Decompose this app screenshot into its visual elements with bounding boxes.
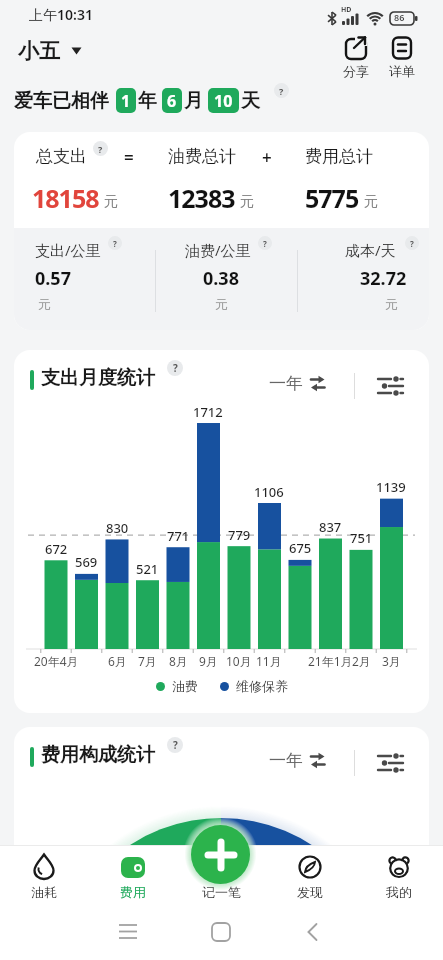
- staticText: 0.38: [203, 266, 239, 291]
- staticText: 672: [45, 540, 68, 558]
- staticText: 油费总计: [168, 146, 236, 167]
- staticText: 771: [167, 527, 190, 545]
- staticText: 油费: [172, 678, 198, 694]
- staticText: 10: [214, 90, 233, 112]
- button[interactable]: [378, 753, 404, 773]
- staticText: 830: [106, 519, 129, 537]
- staticText: =: [124, 146, 134, 169]
- button[interactable]: 详单: [389, 36, 415, 79]
- staticText: ?: [279, 85, 284, 97]
- staticText: 10月: [226, 653, 252, 669]
- staticText: ?: [113, 238, 117, 249]
- staticText: 油费/公里: [185, 240, 251, 260]
- staticText: 小五: [18, 38, 60, 64]
- staticText: 8月: [169, 653, 188, 669]
- staticText: 6月: [108, 653, 127, 669]
- staticText: 费用: [120, 884, 146, 900]
- staticText: 0.57: [35, 266, 71, 291]
- staticText: 一年: [269, 750, 303, 771]
- button[interactable]: 分享: [340, 36, 372, 79]
- button[interactable]: 油耗: [19, 853, 69, 900]
- staticText: 779: [228, 526, 251, 544]
- staticText: 元: [104, 193, 118, 211]
- staticText: 发现: [297, 884, 323, 900]
- staticText: 元: [240, 193, 254, 211]
- staticText: 521: [136, 560, 159, 578]
- staticText: 油耗: [31, 884, 57, 900]
- staticText: 费用构成统计: [41, 743, 155, 767]
- staticText: 9月: [199, 653, 218, 669]
- staticText: ?: [98, 143, 103, 155]
- staticText: ?: [410, 238, 414, 249]
- staticText: ?: [263, 238, 267, 249]
- staticText: 上午10:31: [29, 5, 93, 24]
- staticText: 32.72: [360, 266, 407, 291]
- staticText: 21年1月: [308, 653, 353, 669]
- staticText: 2月: [352, 653, 371, 669]
- staticText: 维修保养: [236, 678, 288, 694]
- staticText: 12383: [168, 181, 235, 215]
- staticText: 费用总计: [305, 146, 373, 167]
- button[interactable]: 费用: [108, 853, 158, 900]
- staticText: 元: [38, 296, 51, 312]
- button[interactable]: [378, 376, 404, 396]
- staticText: 一年: [269, 373, 303, 394]
- button[interactable]: 小五: [18, 38, 82, 64]
- staticText: 569: [75, 553, 98, 571]
- staticText: 月: [184, 89, 203, 113]
- staticText: 天: [241, 89, 260, 113]
- staticText: 1: [121, 90, 131, 112]
- staticText: 我的: [386, 884, 412, 900]
- staticText: 20年4月: [34, 653, 79, 669]
- staticText: 详单: [389, 63, 415, 79]
- staticText: 支出月度统计: [41, 366, 155, 390]
- staticText: 86: [394, 11, 405, 23]
- staticText: 记一笔: [202, 884, 241, 900]
- staticText: 元: [385, 296, 398, 312]
- staticText: 5775: [305, 181, 359, 215]
- staticText: 18158: [32, 181, 99, 215]
- staticText: 751: [350, 529, 373, 547]
- staticText: 支出/公里: [35, 240, 101, 260]
- staticText: HD: [341, 5, 352, 15]
- staticText: 675: [289, 539, 312, 557]
- button[interactable]: 发现: [285, 853, 335, 900]
- staticText: 6: [167, 90, 177, 112]
- staticText: 1712: [193, 403, 223, 421]
- button[interactable]: [191, 825, 250, 884]
- staticText: 成本/天: [345, 240, 396, 260]
- staticText: 7月: [138, 653, 157, 669]
- staticText: 1139: [376, 478, 406, 496]
- staticText: ?: [173, 361, 178, 375]
- staticText: +: [262, 146, 272, 169]
- staticText: 元: [215, 296, 228, 312]
- staticText: 元: [364, 193, 378, 211]
- staticText: ?: [173, 738, 178, 752]
- staticText: 3月: [382, 653, 401, 669]
- staticText: 1106: [254, 483, 284, 501]
- button[interactable]: 一年: [269, 373, 326, 394]
- button[interactable]: 我的: [374, 853, 424, 900]
- staticText: 11月: [256, 653, 282, 669]
- staticText: 年: [138, 89, 157, 113]
- button[interactable]: 一年: [269, 750, 326, 771]
- staticText: 分享: [343, 63, 369, 79]
- staticText: 837: [319, 518, 342, 536]
- staticText: 总支出: [36, 146, 87, 167]
- staticText: 爱车已相伴: [14, 89, 109, 113]
